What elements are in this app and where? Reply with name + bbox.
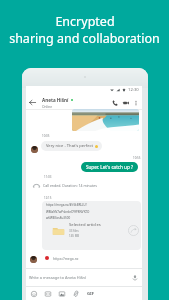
staticText: 11:03 <box>44 175 52 179</box>
staticText: Super. Let's catch up ? <box>86 164 133 170</box>
staticText: Very nice - That's perfect <box>46 143 93 149</box>
staticText: 12:30 <box>128 87 139 93</box>
button[interactable]: Back <box>26 96 39 109</box>
staticText: Write a message to Aneta Hišní <box>29 275 130 280</box>
button[interactable]: Attach file <box>69 287 83 300</box>
staticText: 10:55 <box>133 156 141 160</box>
staticText: https://mega.nz/#!t5kBRLLU! WMaNV7wPsknb… <box>46 203 90 220</box>
button[interactable]: Call <box>109 97 120 108</box>
staticText: GIF <box>87 291 94 297</box>
button[interactable]: https://mega.nz/#!t5kBRLLU! WMaNV7wPsknb… <box>42 201 141 250</box>
button[interactable]: Gallery <box>55 287 69 300</box>
staticText: Encrypted <box>55 13 115 30</box>
button[interactable]: Very nice - That's perfect <box>41 141 102 151</box>
staticText: https://mega.nz <box>53 256 79 261</box>
staticText: Call ended. Duration: 14 minutes <box>43 183 97 188</box>
button[interactable]: Emoji <box>27 287 41 300</box>
staticText: Online <box>42 104 53 108</box>
button[interactable]: GIF <box>83 287 97 300</box>
button[interactable]: Photo <box>72 109 139 131</box>
button[interactable]: Forward <box>128 225 139 236</box>
button[interactable]: Stickers <box>41 287 55 300</box>
staticText: Selected articles <box>69 222 101 228</box>
button[interactable]: Video call <box>120 97 131 108</box>
staticText: sharing and collaboration <box>9 30 160 47</box>
staticText: Aneta Hišní <box>42 97 69 103</box>
staticText: 145 MB <box>69 234 80 238</box>
staticText: 10:05 <box>42 134 50 138</box>
button[interactable]: Record voice message <box>130 273 139 282</box>
button[interactable]: Super. Let's catch up ? <box>81 162 138 172</box>
button[interactable]: More options <box>131 98 140 107</box>
staticText: 33 files <box>69 229 79 233</box>
staticText: 12:15 <box>44 196 52 200</box>
